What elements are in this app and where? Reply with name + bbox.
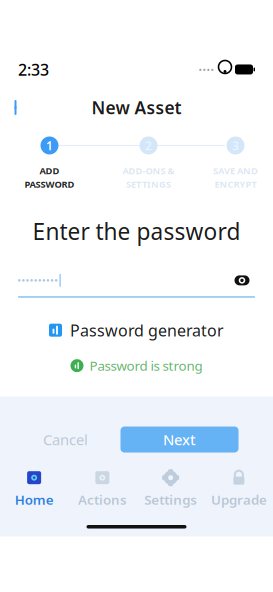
button[interactable]: Show password bbox=[229, 269, 255, 291]
staticText: ADD bbox=[39, 164, 59, 177]
staticText: Settings bbox=[144, 491, 197, 508]
button[interactable]: Cancel bbox=[34, 426, 96, 452]
staticText: Password generator bbox=[70, 320, 224, 341]
staticText: Home bbox=[15, 491, 54, 508]
button[interactable]: Upgrade bbox=[205, 468, 273, 508]
staticText: Password is strong bbox=[89, 357, 202, 374]
staticText: •••• bbox=[198, 63, 214, 76]
staticText: New Asset bbox=[91, 96, 181, 119]
staticText: 2 bbox=[145, 137, 152, 153]
button[interactable]: Next bbox=[120, 426, 238, 452]
staticText: ADD-ONS & bbox=[122, 164, 174, 177]
button[interactable]: Actions bbox=[68, 468, 136, 508]
staticText: 2:33 bbox=[18, 59, 49, 80]
staticText: PASSWORD bbox=[24, 178, 74, 190]
staticText: Actions bbox=[78, 491, 127, 508]
staticText: 1 bbox=[46, 137, 53, 153]
staticText: Enter the password bbox=[32, 216, 240, 246]
staticText: Cancel bbox=[43, 430, 88, 449]
staticText: SETTINGS bbox=[126, 178, 171, 190]
staticText: Upgrade bbox=[211, 491, 267, 508]
staticText: Next bbox=[163, 430, 196, 449]
button[interactable]: Back bbox=[0, 92, 34, 122]
button[interactable]: Home bbox=[0, 468, 68, 508]
button[interactable]: Settings bbox=[136, 468, 205, 508]
button[interactable]: Password generator bbox=[49, 320, 224, 341]
staticText: ENCRYPT bbox=[214, 178, 256, 190]
staticText: SAVE AND bbox=[213, 164, 258, 177]
staticText: 3 bbox=[232, 137, 239, 153]
